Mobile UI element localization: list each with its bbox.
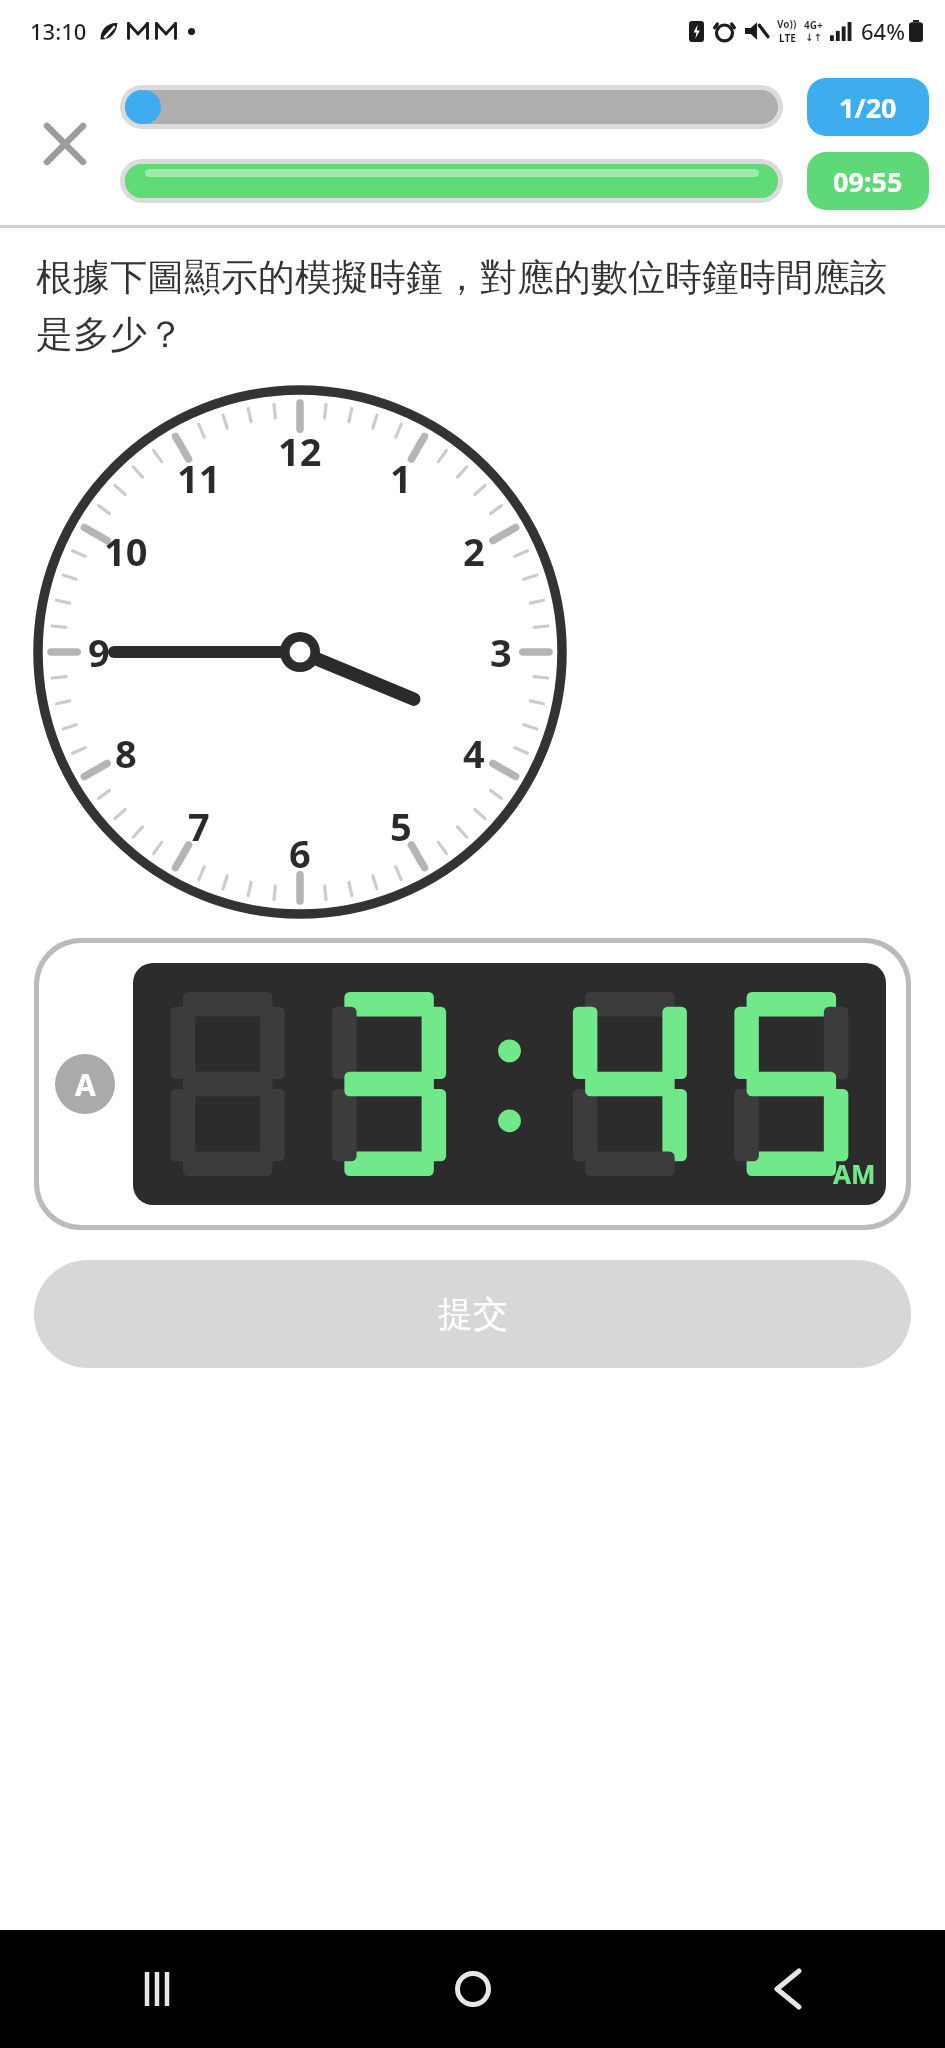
- button[interactable]: Recent apps: [108, 1939, 208, 2039]
- staticText: 11: [177, 452, 221, 504]
- staticText: Vo)): [777, 17, 797, 31]
- button[interactable]: Alarm A: [55, 1054, 115, 1114]
- staticText: 64%: [861, 16, 905, 46]
- staticText: ↓↑: [805, 32, 822, 44]
- staticText: 4: [463, 727, 485, 779]
- staticText: A: [75, 1064, 96, 1105]
- staticText: 10: [104, 525, 148, 577]
- button[interactable]: 1/20: [807, 78, 929, 136]
- staticText: AM: [833, 1156, 876, 1191]
- staticText: 1/20: [839, 89, 897, 126]
- staticText: 根據下圖顯示的模擬時鐘，對應的數位時鐘時間應該是多少？: [36, 254, 909, 358]
- staticText: 3: [490, 626, 512, 678]
- button[interactable]: 09:55: [807, 152, 929, 210]
- staticText: 4G+: [804, 18, 823, 32]
- button[interactable]: Back: [738, 1939, 838, 2039]
- staticText: 9: [88, 626, 110, 678]
- staticText: 5: [390, 800, 412, 852]
- button[interactable]: 提交: [34, 1260, 911, 1368]
- staticText: 12: [278, 425, 322, 477]
- staticText: 09:55: [833, 163, 903, 200]
- button[interactable]: Home: [423, 1939, 523, 2039]
- staticText: 13:10: [30, 16, 87, 46]
- staticText: 1: [390, 452, 412, 504]
- button[interactable]: Close: [34, 113, 96, 175]
- staticText: 7: [188, 800, 210, 852]
- staticText: LTE: [779, 31, 796, 45]
- staticText: 8: [115, 727, 137, 779]
- staticText: 2: [463, 525, 485, 577]
- staticText: 6: [289, 827, 311, 879]
- staticText: 提交: [438, 1292, 508, 1336]
